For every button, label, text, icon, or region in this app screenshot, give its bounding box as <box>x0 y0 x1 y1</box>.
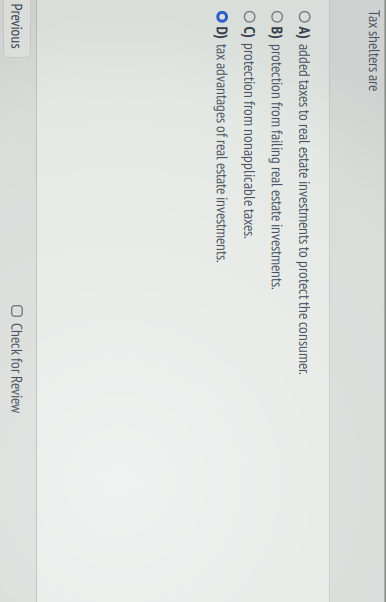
button[interactable]: C) <box>0 234 131 254</box>
staticText: protection from failing real estate inve… <box>0 207 182 227</box>
button[interactable]: B) <box>0 207 182 227</box>
staticText: added taxes to real estate investments t… <box>0 179 267 199</box>
button[interactable]: A) <box>0 179 267 199</box>
button[interactable]: D) <box>0 262 155 282</box>
staticText: protection from nonapplicable taxes. <box>0 234 131 254</box>
staticText: tax advantages of real estate investment… <box>0 262 155 282</box>
